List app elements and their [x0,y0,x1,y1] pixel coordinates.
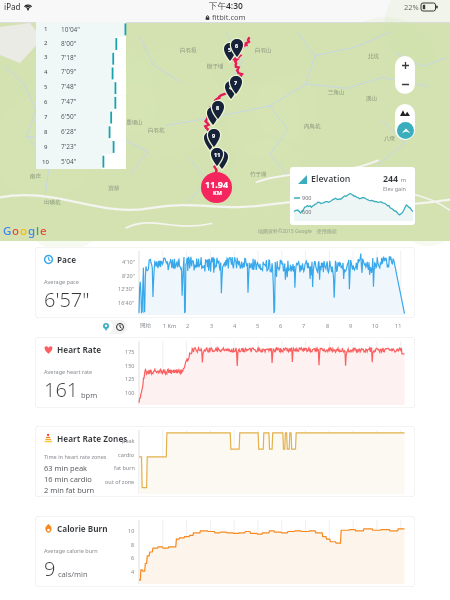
staticText: peak [122,437,135,444]
staticText: Average pace [44,278,79,285]
button[interactable]: Street view [397,122,414,139]
staticText: 開始 [140,322,151,329]
staticText: 9 [44,555,56,582]
staticText: 內鳥坑 [304,123,321,130]
staticText: 63 min peak [44,463,88,473]
staticText: 竹子湖 [250,171,267,178]
staticText: 2 [44,39,48,47]
staticText: 11 [214,151,221,158]
button[interactable]: 8 [36,124,126,139]
button[interactable]: Zoom in [395,56,415,75]
staticText: 100 [125,389,135,396]
button[interactable]: 7 [36,109,126,124]
staticText: 9 [212,132,216,139]
staticText: 244 [383,173,399,185]
staticText: 6 [131,554,135,561]
staticText: Heart Rate Zones [57,433,128,444]
staticText: 溪山 [366,95,377,102]
button[interactable]: Terrain layer [395,104,415,122]
staticText: 8'20" [122,272,135,279]
staticText: 150 [125,362,135,369]
staticText: 7'18" [61,53,77,62]
staticText: 三角山 [328,89,345,96]
staticText: fitbit.com [212,12,246,22]
staticText: 16'40" [118,299,135,306]
staticText: cals/min [56,569,88,579]
button[interactable]: 9 [36,139,126,154]
staticText: 8 [216,104,220,111]
staticText: bpm [79,390,98,400]
staticText: 161 [44,376,79,403]
staticText: 6'57" [44,286,90,313]
staticText: KM [213,189,222,196]
button[interactable]: Distance axis [99,320,113,334]
staticText: G [3,223,12,239]
button[interactable]: 5 [36,79,126,94]
button[interactable]: 2 [36,36,126,50]
staticText: 8 [131,541,135,548]
staticText: 白石坑 [148,127,165,134]
staticText: g [28,223,36,239]
button[interactable]: 1 [36,22,126,36]
staticText: 7 [44,113,48,121]
staticText: Pace [57,254,77,265]
staticText: 11.94 [205,178,229,190]
staticText: 八燈 [384,135,395,142]
staticText: 樹子埔 [207,63,224,70]
button[interactable]: 4 [36,64,126,79]
staticText: 頂湖 [108,185,119,192]
staticText: 6 [279,322,283,329]
button[interactable]: Time axis [113,320,127,334]
staticText: 8 [44,128,48,136]
staticText: Calorie Burn [57,523,108,534]
staticText: e [40,223,47,239]
staticText: Elevation [311,173,351,185]
staticText: Elev gain [383,185,406,192]
staticText: 9 [349,322,353,329]
button[interactable]: Heart Rate Zones [35,426,415,497]
staticText: 4 [131,568,135,575]
staticText: l [36,223,40,239]
staticText: 8'00" [61,39,77,48]
staticText: 4 [229,84,233,91]
button[interactable]: 3 [36,50,126,64]
staticText: 16 min cardio [44,474,92,484]
staticText: out of zone [105,478,135,485]
staticText: 6 [235,42,239,49]
button[interactable]: Pace [35,247,415,318]
staticText: 3 [44,53,48,61]
staticText: 白石山 [255,47,272,54]
button[interactable]: 6 [36,94,126,109]
staticText: 22% [404,2,419,12]
staticText: 125 [125,375,135,382]
staticText: 10 [372,322,379,329]
staticText: 7'09" [61,67,77,76]
staticText: 5 [228,46,232,53]
staticText: Time in heart rate zones [44,453,107,460]
button[interactable]: Heart Rate [35,337,415,408]
staticText: Heart Rate [57,344,102,355]
button[interactable]: Zoom out [395,75,415,94]
staticText: 大窩 [56,147,67,154]
staticText: 6'28" [61,127,77,136]
staticText: 地圖資料©2015 Google 使用條款 [258,228,337,235]
staticText: 5'04" [61,157,77,166]
staticText: iPad [4,1,21,12]
staticText: fat burn [114,464,135,471]
button[interactable]: 10 [36,154,126,169]
staticText: 5 [256,322,260,329]
staticText: cardio [118,451,135,458]
staticText: 北坑 [368,53,379,60]
staticText: 10'04" [61,25,80,34]
button[interactable]: Total distance 11.94 KM [201,172,232,203]
staticText: 白石垣 [180,47,197,54]
button[interactable]: Calorie Burn [35,516,415,587]
button[interactable]: Elevation [290,167,415,225]
staticText: 1 Km [163,322,177,329]
staticText: 7 [234,79,238,86]
staticText: m [399,176,407,184]
staticText: Average calorie burn [44,547,98,554]
staticText: 12'30" [118,285,135,292]
staticText: 10 [42,158,49,166]
staticText: 600 [302,208,312,215]
